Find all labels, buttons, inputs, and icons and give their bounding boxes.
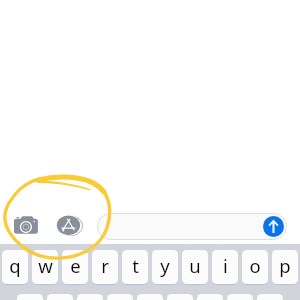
staticText: p (279, 253, 291, 278)
button[interactable]: Camera (11, 212, 39, 240)
staticText: e (70, 253, 81, 278)
button[interactable] (97, 213, 287, 240)
button[interactable]: o (242, 250, 268, 284)
staticText: i (223, 253, 228, 278)
button[interactable]: f (107, 294, 133, 300)
staticText: o (249, 253, 261, 278)
button[interactable]: p (272, 250, 298, 284)
button[interactable]: l (257, 294, 283, 300)
button[interactable]: k (227, 294, 253, 300)
staticText: t (132, 253, 139, 278)
button[interactable]: Send (263, 216, 284, 237)
staticText: y (160, 253, 170, 278)
button[interactable]: d (77, 294, 103, 300)
staticText: u (189, 253, 201, 278)
button[interactable]: t (122, 250, 148, 284)
button[interactable]: w (32, 250, 58, 284)
staticText: q (9, 253, 21, 278)
button[interactable]: j (197, 294, 223, 300)
staticText: w (38, 253, 53, 278)
button[interactable]: e (62, 250, 88, 284)
button[interactable]: s (47, 294, 73, 300)
button[interactable]: a (17, 294, 43, 300)
button[interactable]: i (212, 250, 238, 284)
button[interactable]: App Store (54, 212, 82, 240)
button[interactable]: q (2, 250, 28, 284)
button[interactable]: h (167, 294, 193, 300)
button[interactable]: u (182, 250, 208, 284)
button[interactable]: r (92, 250, 118, 284)
button[interactable]: y (152, 250, 178, 284)
staticText: r (101, 253, 109, 278)
button[interactable]: g (137, 294, 163, 300)
